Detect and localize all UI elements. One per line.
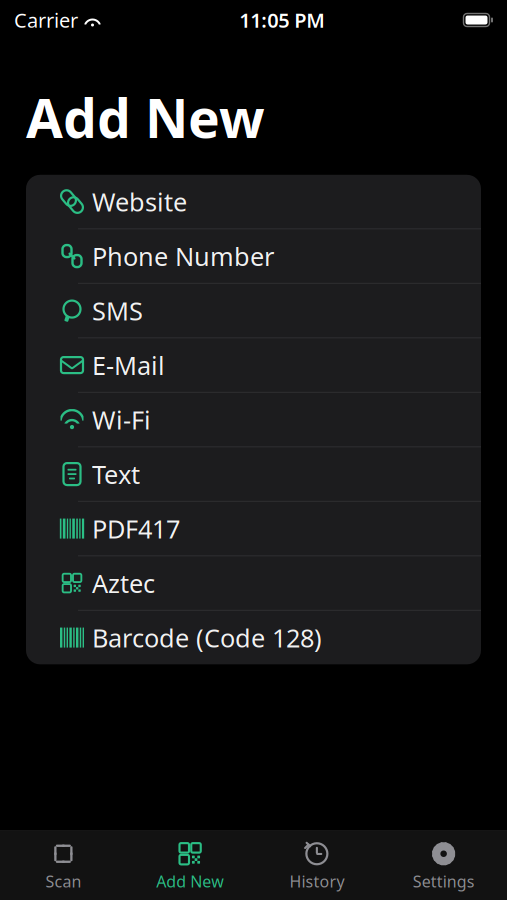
button[interactable]: Aztec bbox=[26, 556, 481, 611]
button[interactable]: Wi-Fi bbox=[26, 393, 481, 447]
staticText: PDF417 bbox=[92, 512, 180, 545]
staticText: 11:05 PM bbox=[239, 7, 325, 33]
staticText: Barcode (Code 128) bbox=[92, 621, 322, 654]
button[interactable]: Phone Number bbox=[26, 229, 481, 284]
button[interactable]: E-Mail bbox=[26, 338, 481, 393]
button[interactable]: History bbox=[253, 831, 380, 900]
button[interactable]: Settings bbox=[380, 831, 507, 900]
button[interactable]: Text bbox=[26, 447, 481, 502]
staticText: Phone Number bbox=[92, 239, 274, 273]
staticText: Scan bbox=[45, 871, 81, 892]
staticText: History bbox=[289, 871, 344, 892]
staticText: Text bbox=[92, 457, 140, 491]
staticText: SMS bbox=[92, 294, 143, 327]
staticText: Add New bbox=[26, 82, 265, 153]
staticText: E-Mail bbox=[92, 348, 165, 382]
staticText: Settings bbox=[413, 871, 475, 892]
staticText: Add New bbox=[156, 871, 224, 892]
staticText: Carrier bbox=[14, 7, 78, 33]
button[interactable]: SMS bbox=[26, 284, 481, 338]
staticText: Aztec bbox=[92, 566, 155, 600]
staticText: Wi-Fi bbox=[92, 403, 151, 436]
staticText: Website bbox=[92, 185, 187, 218]
button[interactable]: Barcode (Code 128) bbox=[26, 611, 481, 664]
button[interactable]: Add New bbox=[127, 831, 254, 900]
button[interactable]: PDF417 bbox=[26, 502, 481, 556]
button[interactable]: Website bbox=[26, 175, 481, 229]
button[interactable]: Scan bbox=[0, 831, 127, 900]
